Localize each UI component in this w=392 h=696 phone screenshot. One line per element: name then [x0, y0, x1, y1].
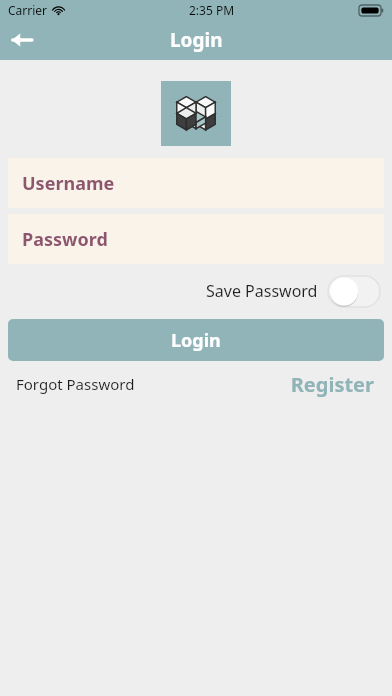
staticText: Carrier — [8, 2, 48, 18]
button[interactable]: Login — [8, 319, 384, 361]
staticText: 2:35 PM — [189, 2, 235, 18]
button[interactable]: Username — [8, 158, 384, 208]
staticText: Forgot Password — [16, 374, 135, 394]
staticText: Login — [170, 27, 223, 53]
staticText: Login — [171, 328, 221, 353]
staticText: Username — [22, 171, 115, 196]
button[interactable]: Register — [290, 371, 374, 398]
staticText: Save Password — [206, 280, 318, 302]
button[interactable]: Password — [8, 214, 384, 264]
staticText: Password — [22, 227, 108, 252]
button[interactable]: Save Password — [0, 274, 380, 308]
staticText: Register — [290, 371, 374, 398]
button[interactable]: Back — [0, 20, 44, 60]
button[interactable]: Forgot Password — [16, 374, 135, 394]
